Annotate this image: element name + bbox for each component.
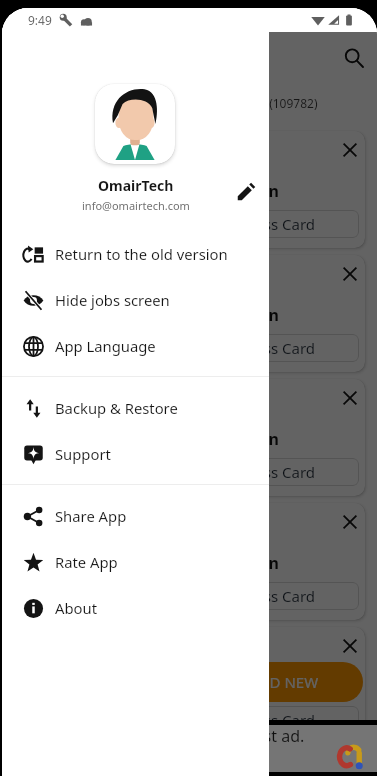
staticText: Business Card <box>216 586 316 606</box>
button[interactable]: Share App <box>2 493 269 539</box>
button[interactable]: Business Card <box>24 706 359 734</box>
button[interactable]: Close <box>12 627 365 744</box>
button[interactable]: Rate App <box>2 539 269 585</box>
button[interactable]: Close <box>12 503 365 620</box>
staticText: Business Card <box>216 710 316 730</box>
button[interactable]: Close <box>12 131 365 248</box>
staticText: Share App <box>55 506 127 526</box>
staticText: Rate App <box>55 552 118 572</box>
staticText: Omair Ahmed Khan <box>123 676 279 698</box>
button[interactable]: Hide jobs screen <box>2 277 269 323</box>
button[interactable]: Close <box>12 379 365 496</box>
staticText: Support <box>55 444 111 464</box>
button[interactable]: Business Card <box>24 582 359 610</box>
staticText: Business Cards (109782) <box>181 95 318 111</box>
button[interactable]: Backup & Restore <box>2 385 269 431</box>
button[interactable]: Business Card <box>24 458 359 486</box>
button[interactable]: Close <box>337 385 363 411</box>
button[interactable]: Close <box>337 509 363 535</box>
staticText: Hide jobs screen <box>55 290 170 310</box>
staticText: Omair Ahmed Khan <box>123 304 279 326</box>
button[interactable]: Business Card <box>24 210 359 238</box>
button[interactable]: Support <box>2 431 269 477</box>
staticText: Omair Ahmed Khan <box>123 552 279 574</box>
staticText: Business Card <box>216 462 316 482</box>
button[interactable]: Close <box>337 633 363 659</box>
staticText: 9:49 <box>28 12 52 28</box>
button[interactable]: Close <box>337 261 363 287</box>
button[interactable]: Close <box>12 255 365 372</box>
staticText: This is a test ad. <box>185 725 305 747</box>
staticText: Omair Ahmed Khan <box>123 428 279 450</box>
button[interactable]: Edit profile <box>230 175 262 207</box>
button[interactable]: ADD NEW <box>178 662 363 702</box>
button[interactable]: Return to the old version <box>2 231 269 277</box>
staticText: Business Card <box>216 338 316 358</box>
staticText: info@omairtech.com <box>82 198 190 213</box>
staticText: Return to the old version <box>55 244 228 264</box>
staticText: Backup & Restore <box>55 398 178 418</box>
button[interactable]: Search <box>338 42 370 74</box>
button[interactable]: About <box>2 585 269 631</box>
button[interactable]: App Language <box>2 323 269 369</box>
staticText: About <box>55 598 97 618</box>
staticText: Business Card <box>216 214 316 234</box>
staticText: OmairTech <box>98 176 174 195</box>
staticText: App Language <box>55 336 156 356</box>
button[interactable]: Business Card <box>24 334 359 362</box>
staticText: ADD NEW <box>249 672 319 692</box>
button[interactable]: Close <box>337 137 363 163</box>
staticText: Omair Ahmed Khan <box>123 180 279 202</box>
